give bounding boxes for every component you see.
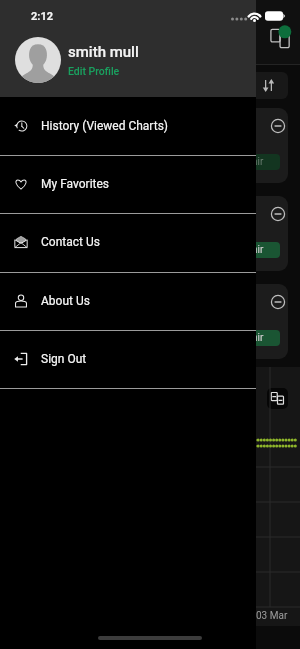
staticText: History (Viewed Charts) [41, 119, 169, 133]
button[interactable]: Sign Out [0, 330, 256, 388]
button[interactable]: Remove [271, 207, 285, 221]
staticText: My Favorites [41, 177, 110, 191]
staticText: Repair [235, 244, 264, 256]
button[interactable]: Remove [271, 119, 285, 133]
staticText: 03 Mar [256, 610, 288, 622]
staticText: Contact Us [41, 235, 100, 249]
staticText: Sign Out [41, 352, 87, 366]
button[interactable]: Remove [271, 295, 285, 309]
button[interactable]: Compare charts [267, 388, 288, 409]
staticText: About Us [41, 294, 90, 308]
button[interactable]: Repair [218, 242, 280, 258]
button[interactable]: About Us [0, 272, 256, 330]
button[interactable]: My Favorites [0, 155, 256, 213]
button[interactable]: History (Viewed Charts) [0, 97, 256, 155]
staticText: Repair [235, 332, 264, 344]
button[interactable]: Repair [218, 154, 280, 170]
button[interactable]: Contact Us [0, 213, 256, 271]
button[interactable]: Edit Profile [68, 65, 120, 77]
staticText: smith mull [68, 43, 139, 61]
button[interactable]: Repair [218, 330, 280, 346]
button[interactable]: Compare [269, 27, 293, 51]
staticText: 2:12 [31, 10, 54, 23]
staticText: Repair [235, 156, 264, 168]
